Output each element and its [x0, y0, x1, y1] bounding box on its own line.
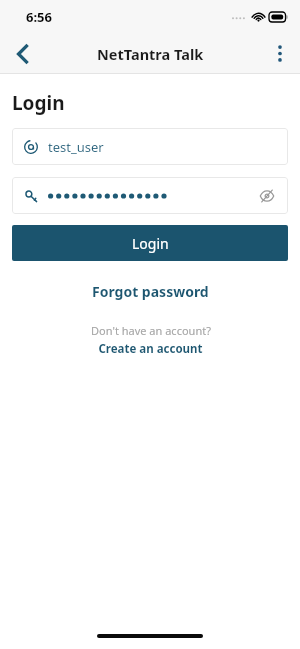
- button[interactable]: Forgot password: [82, 278, 219, 305]
- staticText: test_user: [48, 138, 104, 156]
- staticText: 6:56: [26, 8, 52, 26]
- button[interactable]: Show password: [254, 183, 280, 209]
- button[interactable]: Login: [12, 225, 288, 261]
- staticText: Don't have an account?: [91, 323, 211, 338]
- staticText: Login: [132, 234, 169, 253]
- button[interactable]: test_user: [12, 128, 288, 165]
- button[interactable]: More options: [260, 34, 300, 73]
- button[interactable]: Back: [0, 34, 44, 73]
- staticText: Create an account: [98, 341, 203, 357]
- button[interactable]: Show password: [12, 177, 288, 214]
- staticText: NetTantra Talk: [97, 44, 204, 64]
- button[interactable]: Create an account: [90, 339, 211, 359]
- staticText: Login: [12, 90, 65, 116]
- staticText: Forgot password: [92, 282, 209, 301]
